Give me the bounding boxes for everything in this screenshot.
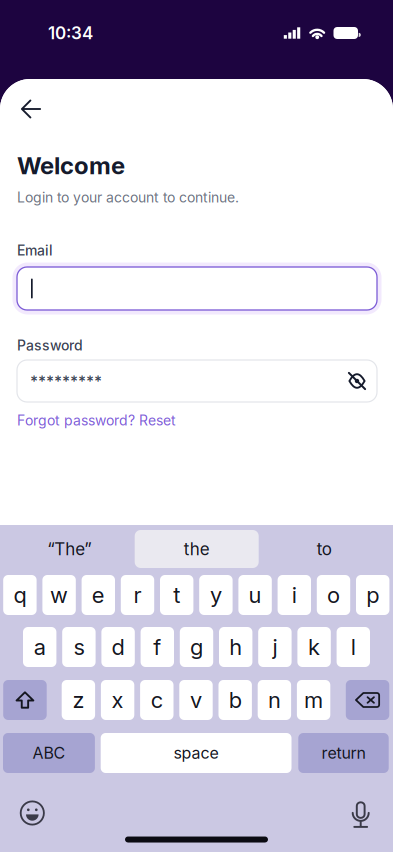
staticText: Password — [17, 337, 83, 354]
staticText: z — [72, 687, 84, 713]
staticText: s — [73, 634, 84, 660]
staticText: x — [112, 687, 124, 713]
button[interactable]: v — [179, 680, 213, 720]
button[interactable]: Shift — [3, 680, 47, 720]
staticText: g — [190, 634, 203, 660]
staticText: e — [92, 582, 105, 608]
button[interactable]: a — [23, 627, 56, 667]
button[interactable]: z — [62, 680, 95, 720]
button[interactable]: ABC — [3, 733, 95, 773]
staticText: r — [133, 582, 141, 608]
button[interactable]: m — [297, 680, 330, 720]
staticText: Login to your account to continue. — [17, 189, 239, 206]
button[interactable]: Dictation — [341, 800, 381, 830]
staticText: n — [268, 687, 281, 713]
button[interactable]: c — [140, 680, 173, 720]
button[interactable]: y — [199, 575, 233, 615]
button[interactable]: k — [297, 627, 331, 667]
button[interactable]: the — [135, 530, 259, 568]
staticText: v — [190, 687, 202, 713]
staticText: d — [112, 634, 125, 660]
button[interactable]: return — [298, 733, 389, 773]
button[interactable]: r — [121, 575, 154, 615]
button[interactable]: i — [278, 575, 311, 615]
button[interactable]: ********* — [17, 360, 377, 402]
button[interactable]: “The” — [4, 530, 135, 568]
staticText: h — [229, 634, 242, 660]
button[interactable]: j — [258, 627, 292, 667]
staticText: p — [366, 582, 379, 608]
staticText: c — [151, 687, 163, 713]
staticText: q — [13, 582, 26, 608]
button[interactable]: q — [3, 575, 37, 615]
staticText: Email — [17, 242, 53, 259]
staticText: y — [210, 582, 222, 608]
button[interactable]: x — [101, 680, 134, 720]
staticText: Welcome — [17, 151, 125, 180]
button[interactable]: u — [238, 575, 272, 615]
staticText: 10:34 — [48, 23, 93, 43]
staticText: k — [308, 634, 320, 660]
staticText: l — [351, 634, 356, 660]
staticText: ********* — [30, 372, 102, 390]
staticText: j — [272, 634, 277, 660]
button[interactable]: Forgot password? Reset — [17, 412, 176, 429]
staticText: o — [327, 582, 340, 608]
button[interactable]: d — [101, 627, 135, 667]
staticText: ABC — [32, 743, 65, 763]
staticText: space — [174, 743, 219, 763]
button[interactable]: p — [356, 575, 389, 615]
staticText: m — [304, 687, 323, 713]
staticText: Forgot password? Reset — [17, 412, 176, 429]
button[interactable]: n — [258, 680, 291, 720]
button[interactable]: Emoji keyboard — [12, 796, 52, 830]
button[interactable]: s — [62, 627, 96, 667]
staticText: to — [317, 539, 332, 559]
button[interactable]: to — [259, 530, 390, 568]
staticText: b — [229, 687, 242, 713]
button[interactable]: l — [337, 627, 370, 667]
button[interactable]: h — [219, 627, 252, 667]
staticText: f — [153, 634, 161, 660]
staticText: u — [249, 582, 262, 608]
button[interactable]: f — [141, 627, 174, 667]
staticText: the — [184, 539, 210, 559]
staticText: return — [321, 743, 365, 763]
button[interactable]: Back — [9, 87, 53, 131]
staticText: “The” — [47, 539, 91, 559]
button[interactable]: g — [180, 627, 213, 667]
staticText: w — [50, 582, 68, 608]
button[interactable]: Delete — [346, 680, 389, 720]
staticText: i — [292, 582, 297, 608]
staticText: a — [34, 634, 46, 660]
button[interactable]: o — [317, 575, 350, 615]
button[interactable]: space — [101, 733, 291, 773]
button[interactable]: t — [160, 575, 193, 615]
staticText: t — [173, 582, 180, 608]
button[interactable]: b — [218, 680, 252, 720]
button[interactable] — [12, 262, 381, 314]
button[interactable]: w — [42, 575, 76, 615]
button[interactable]: e — [82, 575, 115, 615]
